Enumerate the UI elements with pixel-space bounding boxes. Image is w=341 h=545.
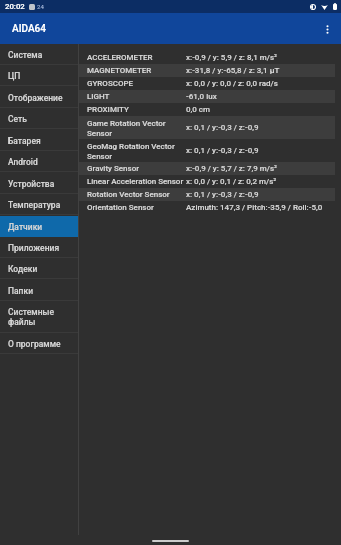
staticText: ACCELEROMETER — [87, 53, 186, 62]
staticText: GeoMag Rotation Vector Sensor — [87, 142, 186, 160]
staticText: Системные файлы — [8, 307, 54, 327]
button[interactable]: MAGNETOMETER — [79, 64, 335, 77]
staticText: Linear Acceleration Sensor — [87, 177, 186, 186]
button[interactable]: Батарея — [0, 130, 78, 151]
staticText: Game Rotation Vector Sensor — [87, 119, 186, 137]
staticText: LIGHT — [87, 92, 186, 101]
staticText: MAGNETOMETER — [87, 66, 186, 75]
button[interactable]: Сеть — [0, 108, 78, 129]
staticText: ЦП — [8, 71, 21, 81]
button[interactable]: More options — [313, 15, 341, 43]
staticText: AIDA64 — [12, 23, 46, 35]
staticText: Rotation Vector Sensor — [87, 190, 186, 199]
staticText: x: 0,0 / y: 0,0 / z: 0,0 rad/s — [186, 79, 278, 88]
button[interactable]: ACCELEROMETER — [79, 51, 335, 64]
button[interactable]: Rotation Vector Sensor — [79, 188, 335, 201]
staticText: 0,0 cm — [186, 105, 211, 114]
button[interactable]: Устройства — [0, 173, 78, 194]
staticText: x:-0,9 / y: 5,7 / z: 7,9 m/s² — [186, 164, 277, 173]
staticText: Gravity Sensor — [87, 164, 186, 173]
button[interactable]: GeoMag Rotation Vector Sensor — [79, 139, 335, 162]
button[interactable]: Отображение — [0, 87, 78, 108]
staticText: Кодеки — [8, 264, 38, 274]
staticText: Android — [8, 157, 38, 167]
staticText: PROXIMITY — [87, 105, 186, 114]
button[interactable]: Linear Acceleration Sensor — [79, 175, 335, 188]
staticText: Папки — [8, 286, 34, 296]
staticText: Orientation Sensor — [87, 203, 186, 212]
staticText: 24 — [37, 3, 44, 10]
staticText: -61,0 lux — [186, 92, 217, 101]
staticText: Azimuth: 147,3 / Pitch:-35,9 / Roll:-5,0 — [186, 203, 323, 212]
button[interactable]: Системные файлы — [0, 301, 78, 333]
button[interactable]: Система — [0, 44, 78, 65]
button[interactable]: Температура — [0, 194, 78, 215]
button[interactable]: Папки — [0, 280, 78, 301]
button[interactable]: Gravity Sensor — [79, 162, 335, 175]
button[interactable]: Android — [0, 151, 78, 172]
staticText: x:-31,8 / y:-65,8 / z: 3,1 µT — [186, 66, 280, 75]
staticText: Приложения — [8, 243, 60, 253]
button[interactable]: Orientation Sensor — [79, 201, 335, 214]
staticText: Температура — [8, 200, 61, 210]
button[interactable]: Приложения — [0, 237, 78, 258]
staticText: Отображение — [8, 93, 63, 103]
staticText: x: 0,0 / y: 0,1 / z: 0,2 m/s² — [186, 177, 277, 186]
button[interactable]: ЦП — [0, 65, 78, 86]
staticText: x: 0,1 / y:-0,3 / z:-0,9 — [186, 146, 259, 155]
staticText: Система — [8, 50, 43, 60]
button[interactable]: GYROSCOPE — [79, 77, 335, 90]
button[interactable]: Game Rotation Vector Sensor — [79, 116, 335, 139]
button[interactable]: О программе — [0, 333, 78, 354]
staticText: x:-0,9 / y: 5,9 / z: 8,1 m/s² — [186, 53, 277, 62]
staticText: О программе — [8, 339, 61, 349]
button[interactable]: PROXIMITY — [79, 103, 335, 116]
staticText: Сеть — [8, 114, 27, 124]
button[interactable]: Кодеки — [0, 258, 78, 279]
staticText: Датчики — [8, 222, 43, 232]
staticText: 20:02 — [5, 2, 25, 11]
staticText: x: 0,1 / y:-0,3 / z:-0,9 — [186, 123, 259, 132]
staticText: GYROSCOPE — [87, 79, 186, 88]
staticText: Устройства — [8, 179, 55, 189]
button[interactable]: LIGHT — [79, 90, 335, 103]
button[interactable]: Датчики — [0, 216, 78, 237]
staticText: x: 0,1 / y:-0,3 / z:-0,9 — [186, 190, 259, 199]
staticText: Батарея — [8, 136, 41, 146]
